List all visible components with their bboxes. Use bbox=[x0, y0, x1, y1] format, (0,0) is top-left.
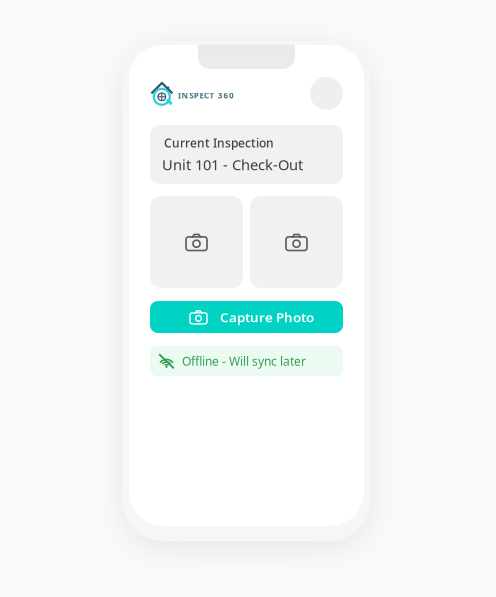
button[interactable]: Capture Photo bbox=[150, 301, 343, 333]
staticText: Offline - Will sync later bbox=[182, 353, 306, 369]
staticText: INSPECT 360 bbox=[178, 90, 234, 101]
staticText: Capture Photo bbox=[220, 308, 314, 326]
staticText: Unit 101 - Check-Out bbox=[162, 155, 303, 174]
button[interactable]: Add photo bbox=[150, 196, 243, 288]
button[interactable]: Add photo bbox=[250, 196, 343, 288]
button[interactable]: Profile bbox=[310, 77, 343, 110]
staticText: Current Inspection bbox=[164, 135, 274, 151]
